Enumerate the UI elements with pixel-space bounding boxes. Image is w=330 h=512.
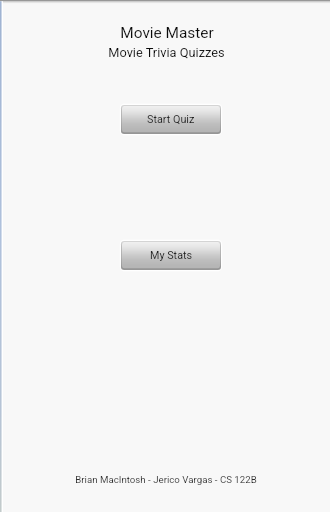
staticText: Brian MacIntosh - Jerico Vargas - CS 122… xyxy=(75,474,257,485)
staticText: Movie Master xyxy=(120,24,214,42)
button[interactable]: My Stats xyxy=(121,241,221,270)
staticText: My Stats xyxy=(150,249,193,262)
staticText: Start Quiz xyxy=(147,113,195,126)
button[interactable]: Start Quiz xyxy=(121,105,221,134)
staticText: Movie Trivia Quizzes xyxy=(108,45,225,60)
